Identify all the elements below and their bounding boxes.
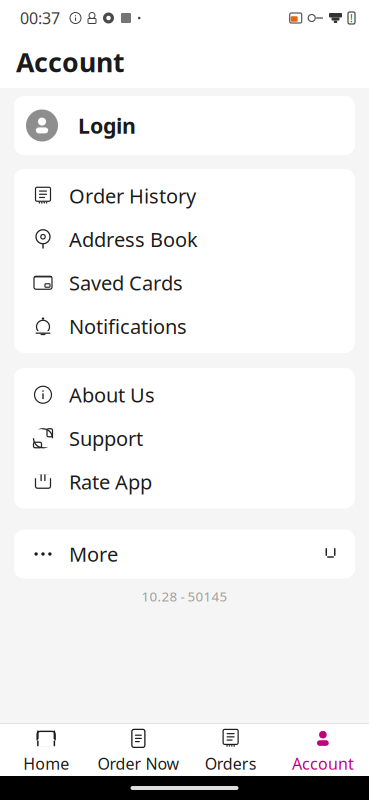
staticText: Login [78, 111, 136, 140]
button[interactable]: More [14, 529, 355, 578]
button[interactable]: Order History [14, 174, 355, 217]
staticText: Home [23, 753, 69, 774]
button[interactable]: Order Now [92, 720, 184, 780]
button[interactable]: About Us [14, 373, 355, 416]
staticText: 00:37 [20, 7, 60, 29]
staticText: Orders [205, 753, 257, 774]
button[interactable]: Saved Cards [14, 261, 355, 304]
button[interactable]: Login [14, 96, 355, 155]
staticText: Account [292, 753, 354, 774]
staticText: ! [350, 11, 353, 25]
staticText: More [69, 541, 118, 567]
button[interactable]: Rate App [14, 460, 355, 503]
staticText: Order Now [97, 753, 179, 774]
staticText: Account [16, 44, 125, 80]
button[interactable]: Support [14, 416, 355, 460]
button[interactable]: Account [277, 720, 369, 780]
button[interactable]: Orders [184, 720, 277, 780]
staticText: Saved Cards [69, 269, 183, 296]
staticText: Support [69, 425, 143, 452]
staticText: Order History [69, 182, 196, 209]
staticText: Rate App [69, 468, 152, 495]
staticText: 10.28 - 50145 [141, 587, 227, 605]
staticText: About Us [69, 381, 155, 408]
staticText: Notifications [69, 313, 187, 340]
button[interactable]: Notifications [14, 304, 355, 348]
button[interactable]: Address Book [14, 217, 355, 261]
button[interactable]: Home [0, 720, 92, 780]
staticText: Address Book [69, 226, 198, 253]
